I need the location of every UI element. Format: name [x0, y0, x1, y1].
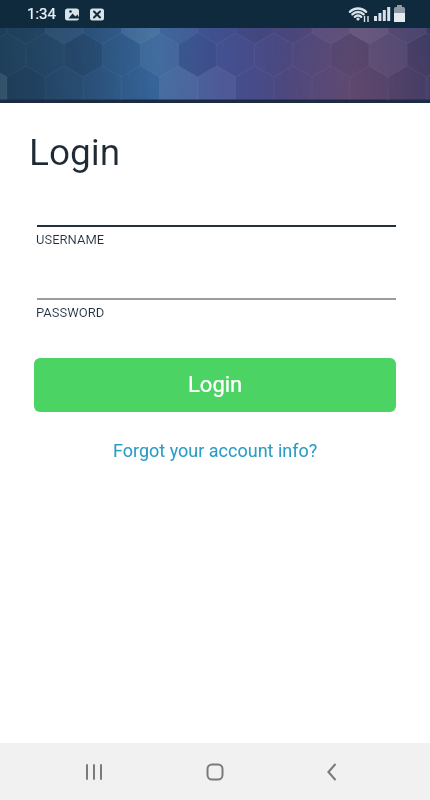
button[interactable] — [37, 258, 396, 316]
button[interactable] — [39, 743, 149, 800]
button[interactable]: Forgot your account info? — [113, 440, 318, 461]
staticText: USERNAME — [36, 232, 105, 247]
button[interactable] — [160, 743, 270, 800]
button[interactable] — [37, 186, 396, 244]
staticText: PASSWORD — [36, 305, 105, 320]
staticText: Login — [188, 372, 243, 398]
button[interactable] — [277, 743, 387, 800]
staticText: Login — [29, 131, 121, 174]
staticText: 1:34 — [27, 5, 56, 23]
button[interactable]: Login — [34, 358, 396, 412]
